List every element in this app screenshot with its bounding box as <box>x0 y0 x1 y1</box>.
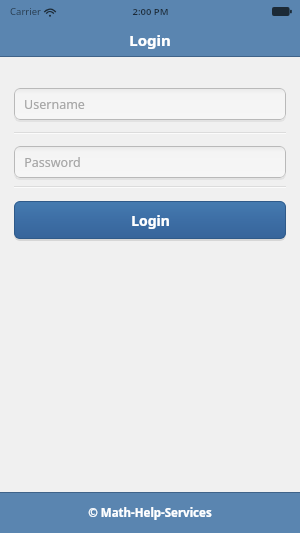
other: Battery full <box>272 7 292 16</box>
staticText: Username <box>24 96 85 113</box>
staticText: © Math-Help-Services <box>88 505 212 521</box>
button[interactable]: Login <box>14 201 286 239</box>
staticText: Login <box>129 30 171 50</box>
staticText: Carrier <box>10 5 41 18</box>
button[interactable]: Username <box>14 88 286 120</box>
staticText: 2:00 PM <box>132 5 169 18</box>
staticText: Password <box>24 154 81 171</box>
staticText: Login <box>131 211 170 230</box>
other: Wi-Fi signal <box>45 7 55 17</box>
button[interactable]: Password <box>14 146 286 178</box>
